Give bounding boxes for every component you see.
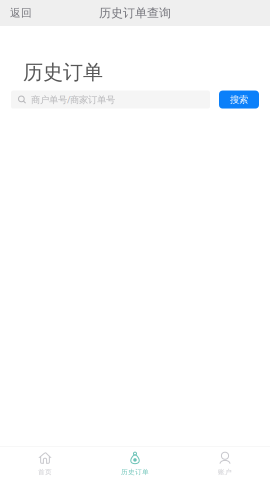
staticText: 历史订单: [23, 60, 103, 85]
button[interactable]: 商户单号/商家订单号: [11, 91, 210, 109]
staticText: 商户单号/商家订单号: [31, 93, 115, 106]
staticText: 搜索: [230, 94, 248, 105]
staticText: 历史订单: [121, 468, 149, 476]
staticText: 账户: [218, 468, 232, 476]
staticText: 首页: [38, 468, 52, 476]
button[interactable]: 搜索: [219, 91, 259, 109]
staticText: 历史订单查询: [99, 6, 171, 20]
button[interactable]: 返回: [0, 1, 32, 24]
staticText: 返回: [10, 6, 32, 19]
button[interactable]: 历史订单: [90, 445, 180, 480]
button[interactable]: 账户: [180, 445, 270, 480]
button[interactable]: 首页: [0, 445, 90, 480]
